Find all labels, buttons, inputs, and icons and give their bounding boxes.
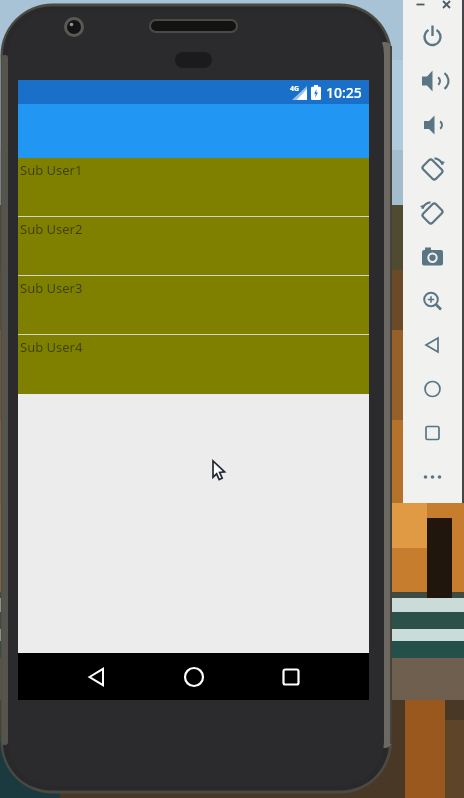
button[interactable]: Sub User2 [18,217,369,276]
button[interactable] [73,653,121,700]
button[interactable] [403,411,462,455]
staticText: Sub User2 [20,220,83,238]
button[interactable] [441,0,453,9]
staticText: 4G [290,84,300,94]
button[interactable] [403,147,462,191]
button[interactable] [403,367,462,411]
button[interactable]: Sub User4 [18,335,369,394]
staticText: Sub User1 [20,161,83,179]
staticText: 10:25 [326,83,362,102]
staticText: Sub User4 [20,338,83,356]
button[interactable] [403,323,462,367]
button[interactable]: Sub User3 [18,276,369,335]
button[interactable] [403,59,462,103]
button[interactable] [403,15,462,59]
button[interactable] [415,0,427,9]
button[interactable] [403,279,462,323]
button[interactable] [403,191,462,235]
button[interactable] [403,103,462,147]
button[interactable] [267,653,315,700]
staticText: Sub User3 [20,279,83,297]
button[interactable] [170,653,218,700]
button[interactable] [403,235,462,279]
button[interactable] [403,455,462,499]
button[interactable]: Sub User1 [18,158,369,217]
